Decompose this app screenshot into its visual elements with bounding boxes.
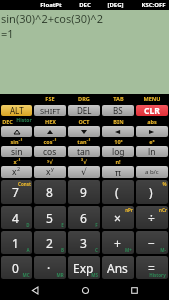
button[interactable]: log [102,146,134,157]
button[interactable]: π [102,166,134,178]
staticText: M- [160,247,166,253]
staticText: x⁻¹ [13,158,21,165]
staticText: cos⁻¹ [43,138,57,145]
button[interactable]: BS [102,105,134,116]
staticText: D [26,222,30,228]
button[interactable]: 2 [34,231,66,254]
button[interactable]: SHIFT [34,105,66,116]
button[interactable]: sin [1,146,32,157]
staticText: Const [18,181,31,187]
staticText: DEL [77,105,92,116]
button[interactable]: ÷ [136,206,168,229]
staticText: nPr [125,207,133,213]
staticText: × [114,210,121,226]
staticText: E [61,222,64,228]
staticText: a b/c [145,168,159,176]
staticText: sin(30)^2+cos(30)^2 [1,11,103,26]
staticText: Exp [73,260,94,276]
staticText: tan [77,146,91,157]
staticText: 3 [80,235,87,251]
staticText: 7 [12,184,19,200]
staticText: ALT [10,105,24,116]
staticText: tan⁻¹ [77,138,91,145]
button[interactable]: x [34,166,66,178]
button[interactable]: × [102,206,134,229]
button[interactable]: 8 [34,180,66,204]
staticText: CLR [144,105,160,116]
staticText: 9 [80,184,87,200]
button[interactable]: − [136,231,168,254]
staticText: DEC [2,118,13,125]
button[interactable]: Right [136,126,168,137]
button[interactable]: + [102,231,134,254]
staticText: ( [115,184,119,200]
staticText: nCr [159,207,167,213]
staticText: KSC:OFF [141,1,166,9]
staticText: ʸ√ [47,158,53,165]
button[interactable]: ln [136,146,168,157]
staticText: HEX [45,118,56,125]
staticText: MC [22,272,30,278]
staticText: MS [91,272,98,278]
button[interactable]: Back [20,280,50,300]
button[interactable]: Recents [119,280,149,300]
button[interactable]: CLR [136,105,168,116]
staticText: [DEG] [107,1,124,9]
button[interactable]: 5 [34,206,66,229]
button[interactable]: 6 [68,206,100,229]
staticText: √ [81,167,87,177]
button[interactable]: DEL [68,105,100,116]
staticText: BIN [113,118,124,125]
button[interactable]: tan [68,146,100,157]
staticText: 5 [46,210,53,226]
staticText: DRG [78,95,90,103]
staticText: FSE [45,95,55,103]
button[interactable]: Left [102,126,134,137]
staticText: eˣ [149,138,155,145]
button[interactable]: √ [68,166,100,178]
staticText: BS [113,105,123,116]
button[interactable]: x [1,166,32,178]
staticText: DEC [79,1,91,9]
staticText: FloatPt [40,1,62,9]
staticText: 2 [46,235,53,251]
button[interactable]: 9 [68,180,100,204]
button[interactable]: 4 [1,206,32,229]
staticText: ln [148,146,156,157]
staticText: x [12,166,17,178]
staticText: · [47,260,51,276]
button[interactable]: Home [70,280,100,300]
button[interactable]: 1 [1,231,32,254]
button[interactable]: a b/c [136,166,168,178]
staticText: Ans [107,260,128,276]
button[interactable]: ( [102,180,134,204]
button[interactable]: ALT [1,105,32,116]
staticText: F [95,222,98,228]
staticText: abs [147,118,157,125]
staticText: C [95,247,98,253]
button[interactable]: = [136,256,168,279]
button[interactable]: 3 [68,231,100,254]
button[interactable]: ) [136,180,168,204]
staticText: SHIFT [40,106,61,116]
staticText: History [15,117,33,125]
staticText: ) [149,184,153,200]
button[interactable]: Move up [1,126,32,137]
button[interactable]: 7 [1,180,32,204]
staticText: 2 [17,166,21,172]
staticText: =1 [1,26,14,41]
button[interactable]: · [34,256,66,279]
staticText: y [51,166,54,172]
staticText: log [112,146,125,157]
button[interactable]: 0 [1,256,32,279]
staticText: B [61,247,64,253]
staticText: = [148,260,155,276]
button[interactable]: cos [34,146,66,157]
staticText: 1 [12,235,19,251]
button[interactable]: Down [68,126,100,137]
button[interactable]: Ans [102,256,134,279]
staticText: 4 [12,210,19,226]
staticText: π [115,166,121,178]
button[interactable]: Up [34,126,66,137]
button[interactable]: Exp [68,256,100,279]
